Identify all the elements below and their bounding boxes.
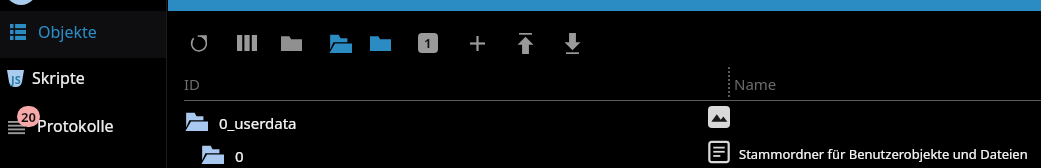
staticText: Protokolle [37,115,114,137]
button[interactable]: Open folder [322,25,358,61]
button[interactable]: Columns [229,25,265,61]
staticText: Objekte [38,21,97,43]
button[interactable]: Protokolle [0,103,167,149]
staticText: 1 [424,34,432,52]
button[interactable]: Folder [273,25,309,61]
button[interactable]: Expand level 1 [410,25,446,61]
staticText: Stammordner für Benutzerobjekte und Date… [739,145,1028,163]
staticText: JS [11,72,21,87]
button[interactable]: 0_userdata [168,102,1041,135]
staticText: 0_userdata [219,113,297,133]
staticText: Name [734,74,777,94]
staticText: 20 [21,108,36,126]
button[interactable]: JS [0,55,167,101]
button[interactable]: Download [554,25,590,61]
button[interactable]: Objekte [0,8,167,55]
staticText: Skripte [32,67,85,89]
staticText: ID [184,74,201,94]
button[interactable]: Upload [507,25,543,61]
button[interactable]: 0 [168,135,1041,168]
button[interactable]: Refresh [182,25,218,61]
button[interactable]: New folder [362,25,398,61]
button[interactable]: Add [459,25,495,61]
staticText: 0 [235,146,244,166]
